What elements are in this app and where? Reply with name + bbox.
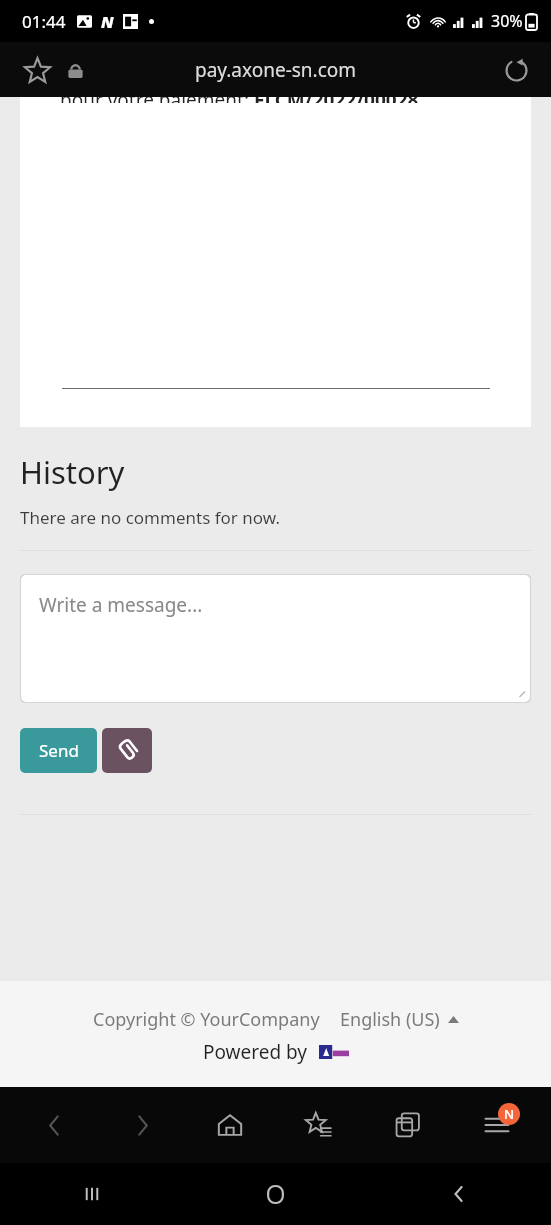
button[interactable]: Tabs [363,1087,452,1163]
button[interactable]: Menu [452,1087,541,1163]
button[interactable]: Bookmarks [274,1087,363,1163]
button[interactable]: Recent apps [0,1163,183,1225]
button[interactable]: Home [186,1087,274,1163]
staticText: N [101,11,114,33]
button[interactable]: Bookmark this page [20,53,54,87]
staticText: pour votre paiement: [60,97,254,103]
staticText: pay.axone-sn.com [195,57,357,83]
staticText: FLCM/2022/00028 [254,97,419,103]
staticText: Send [39,739,79,762]
staticText: Powered by [203,1039,308,1065]
button[interactable]: Attach file [102,728,152,773]
staticText: 30% [491,10,523,32]
button[interactable]: Back [367,1163,551,1225]
staticText: Copyright © YourCompany [93,1007,320,1032]
staticText: 01:44 [22,10,66,33]
button[interactable]: Home [183,1163,367,1225]
button[interactable]: Forward [98,1087,186,1163]
staticText: N [504,1105,515,1123]
staticText: History [20,451,125,493]
button[interactable]: Send [20,728,97,773]
staticText: Write a message... [39,592,203,618]
staticText: There are no comments for now. [20,506,280,529]
staticText: English (US) [340,1007,440,1032]
button[interactable]: Back [10,1087,98,1163]
button[interactable]: Reload page [497,51,535,89]
button[interactable]: English (US) [340,1007,459,1032]
button[interactable]: Site security info [60,55,90,85]
button[interactable]: pay.axone-sn.com [105,42,446,97]
button[interactable]: Write a message [20,574,531,703]
